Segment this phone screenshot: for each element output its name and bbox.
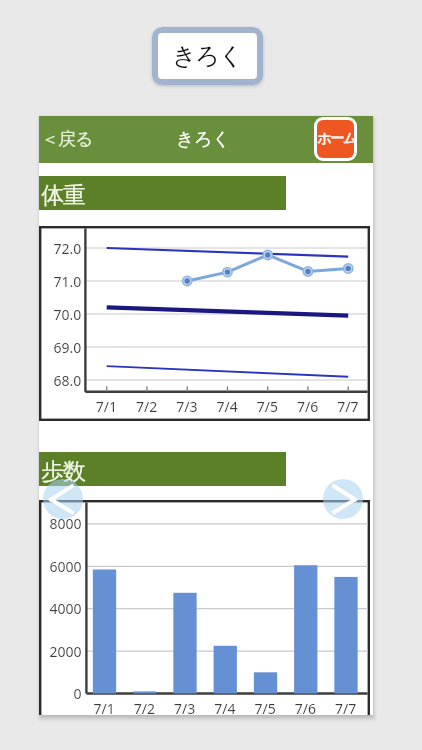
button[interactable]: ＜戻る (39, 122, 101, 157)
staticText: きろく (176, 128, 231, 151)
staticText: ＜戻る (41, 128, 93, 151)
button[interactable]: ホーム (317, 120, 354, 158)
staticText: きろく (172, 41, 243, 71)
button[interactable]: きろく (158, 33, 257, 79)
button[interactable]: Next (323, 479, 363, 519)
button[interactable]: 歩数 (39, 452, 286, 486)
button[interactable]: 体重 (39, 176, 286, 210)
staticText: 体重 (42, 181, 85, 210)
staticText: ホーム (317, 130, 354, 148)
staticText: 歩数 (42, 457, 85, 486)
button[interactable]: Previous (43, 479, 83, 519)
